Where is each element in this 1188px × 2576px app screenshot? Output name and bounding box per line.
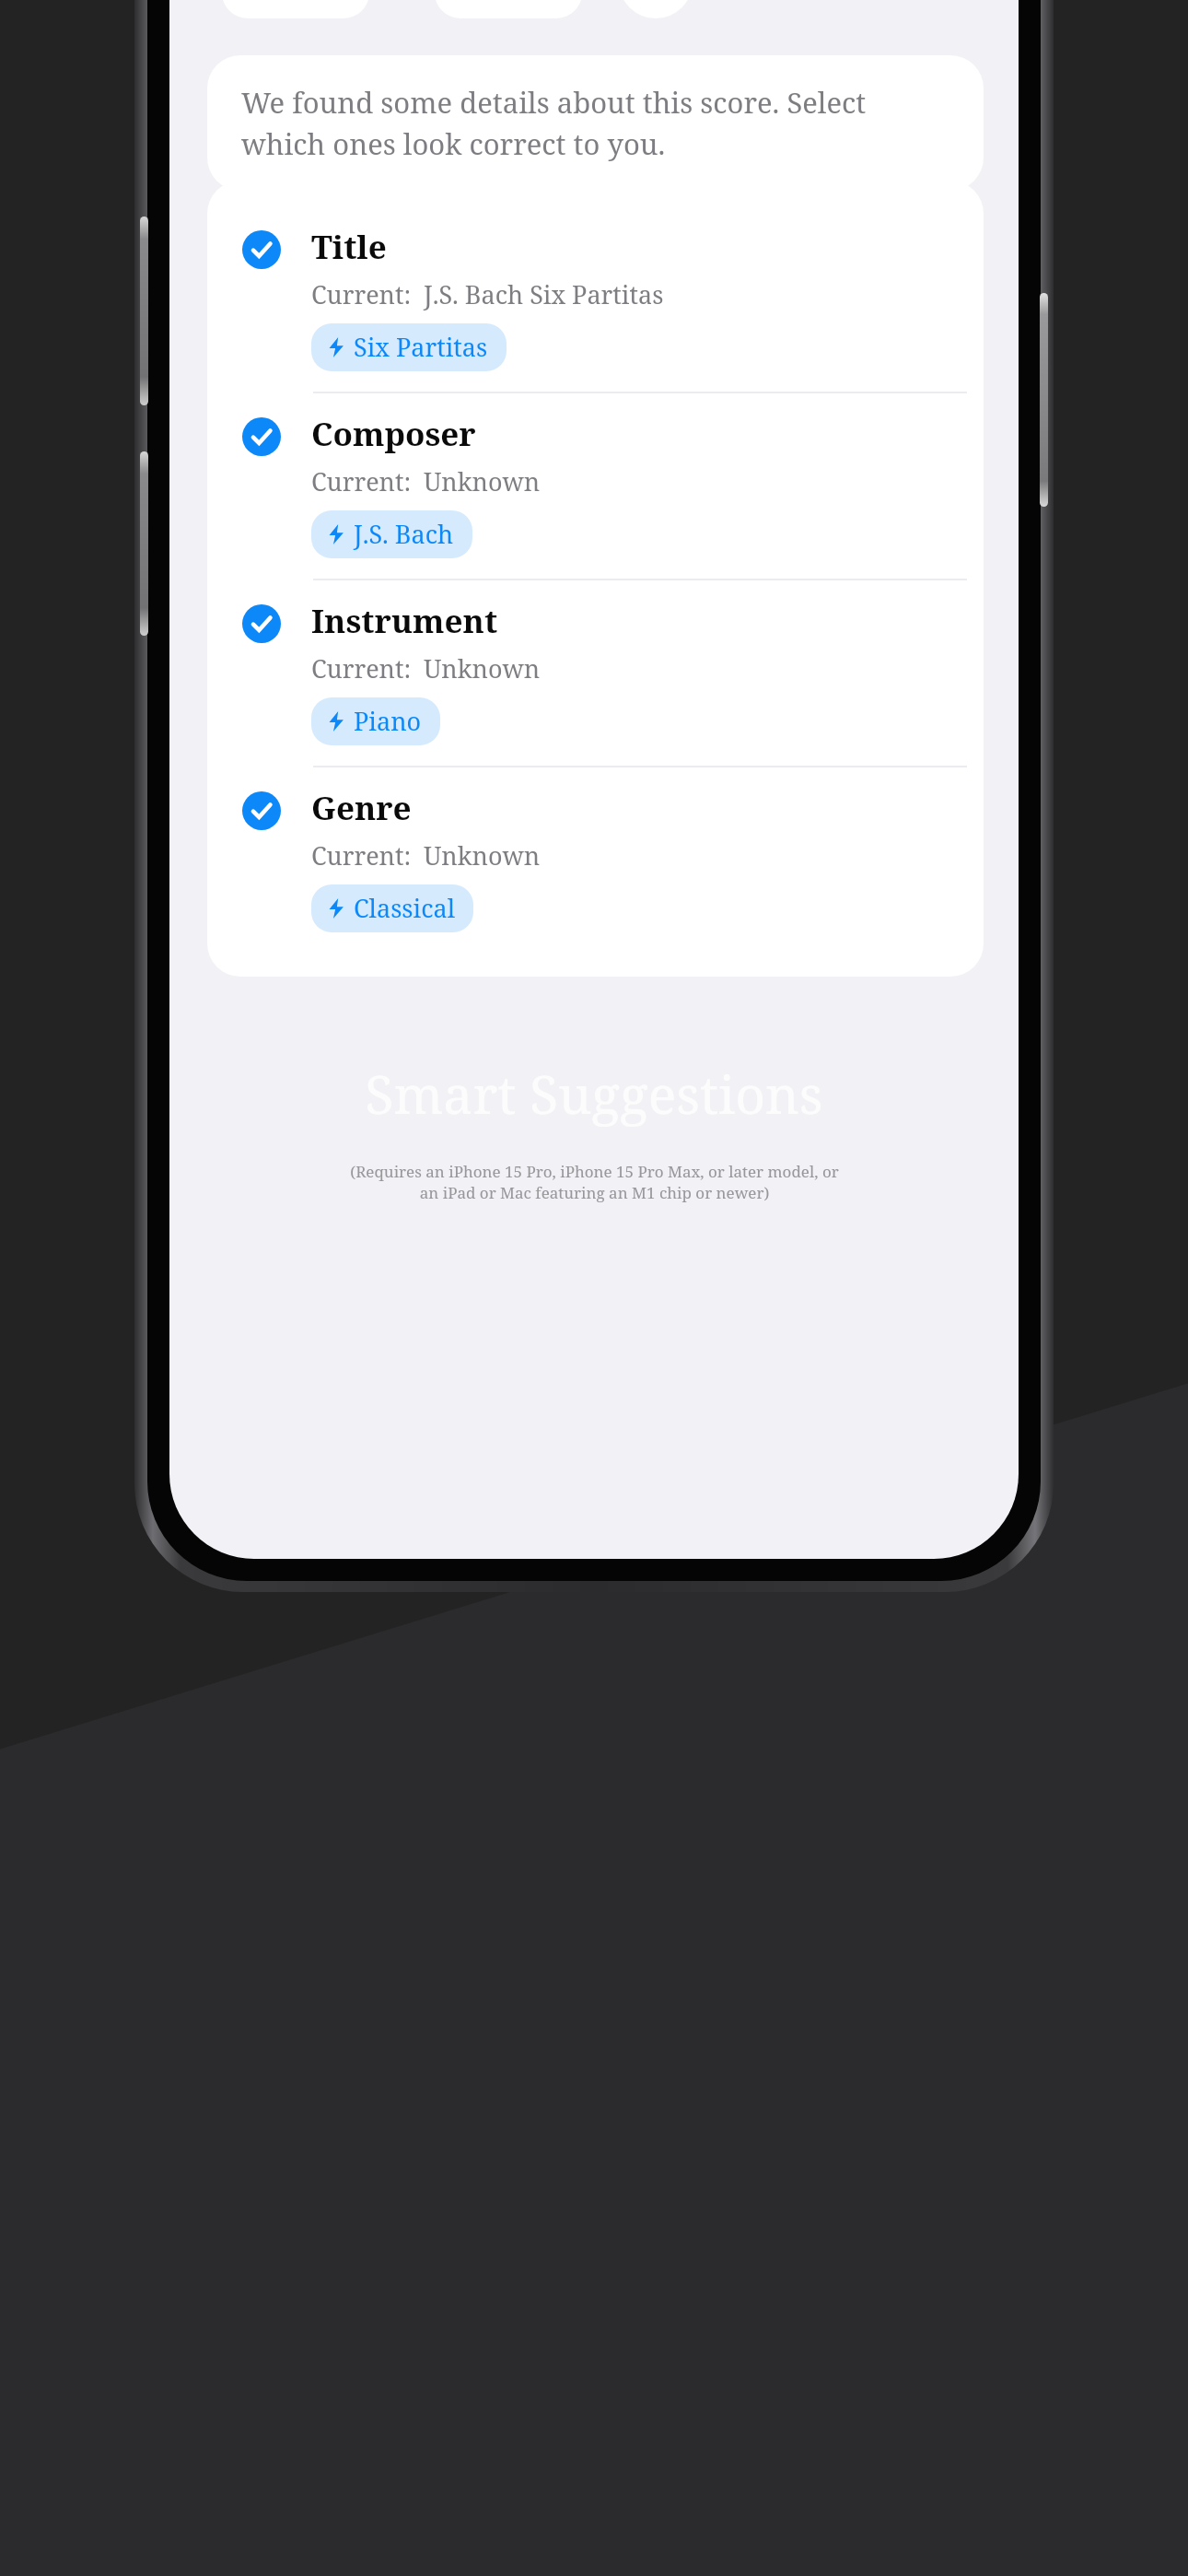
staticText: Instrument [311, 599, 498, 643]
button[interactable]: Piano [311, 697, 440, 745]
staticText: Unknown [424, 464, 541, 498]
button[interactable] [435, 0, 582, 18]
staticText: J.S. Bach [354, 517, 454, 551]
button[interactable]: Six Partitas [311, 323, 507, 371]
staticText: Current: [311, 651, 412, 685]
button[interactable]: Classical [311, 884, 473, 932]
staticText: Composer [311, 412, 476, 456]
staticText: (Requires an iPhone 15 Pro, iPhone 15 Pr… [350, 1161, 839, 1203]
button[interactable]: More [619, 0, 693, 18]
button[interactable]: Instrument [207, 580, 984, 766]
staticText: Current: [311, 838, 412, 872]
staticText: Piano [354, 704, 422, 738]
staticText: Unknown [424, 651, 541, 685]
staticText: Smart Suggestions [365, 1058, 823, 1130]
staticText: Six Partitas [354, 330, 488, 364]
staticText: Genre [311, 786, 412, 830]
staticText: Current: [311, 464, 412, 498]
staticText: We found some details about this score. … [241, 83, 949, 163]
button[interactable]: Genre [207, 767, 984, 953]
staticText: Current: [311, 277, 412, 311]
staticText: Title [311, 225, 387, 269]
staticText: J.S. Bach Six Partitas [424, 277, 664, 311]
button[interactable]: J.S. Bach [311, 510, 472, 558]
staticText: Classical [354, 891, 455, 925]
button[interactable] [222, 0, 369, 18]
staticText: Unknown [424, 838, 541, 872]
button[interactable]: Title [207, 206, 984, 392]
button[interactable]: Composer [207, 393, 984, 579]
